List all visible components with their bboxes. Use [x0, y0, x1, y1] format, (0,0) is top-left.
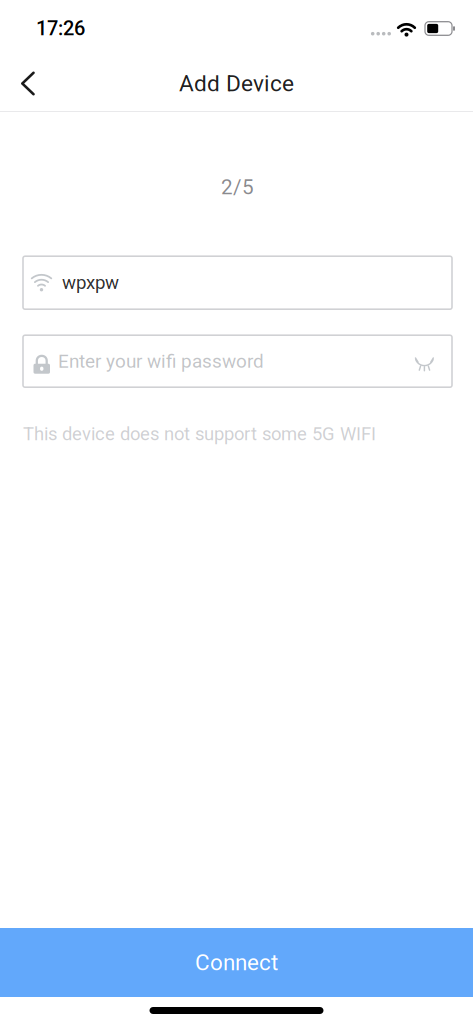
staticText: This device does not support some 5G WIF…	[23, 423, 376, 445]
staticText: 17:26	[36, 17, 85, 40]
staticText: Connect	[195, 949, 278, 976]
staticText: Enter your wifi password	[58, 350, 264, 372]
staticText: 2/5	[221, 175, 254, 199]
button[interactable]: Back	[0, 56, 59, 111]
staticText: Add Device	[179, 70, 294, 97]
button[interactable]: Connect	[0, 928, 473, 997]
button[interactable]: Show password	[405, 339, 452, 384]
staticText: wpxpw	[62, 272, 119, 294]
